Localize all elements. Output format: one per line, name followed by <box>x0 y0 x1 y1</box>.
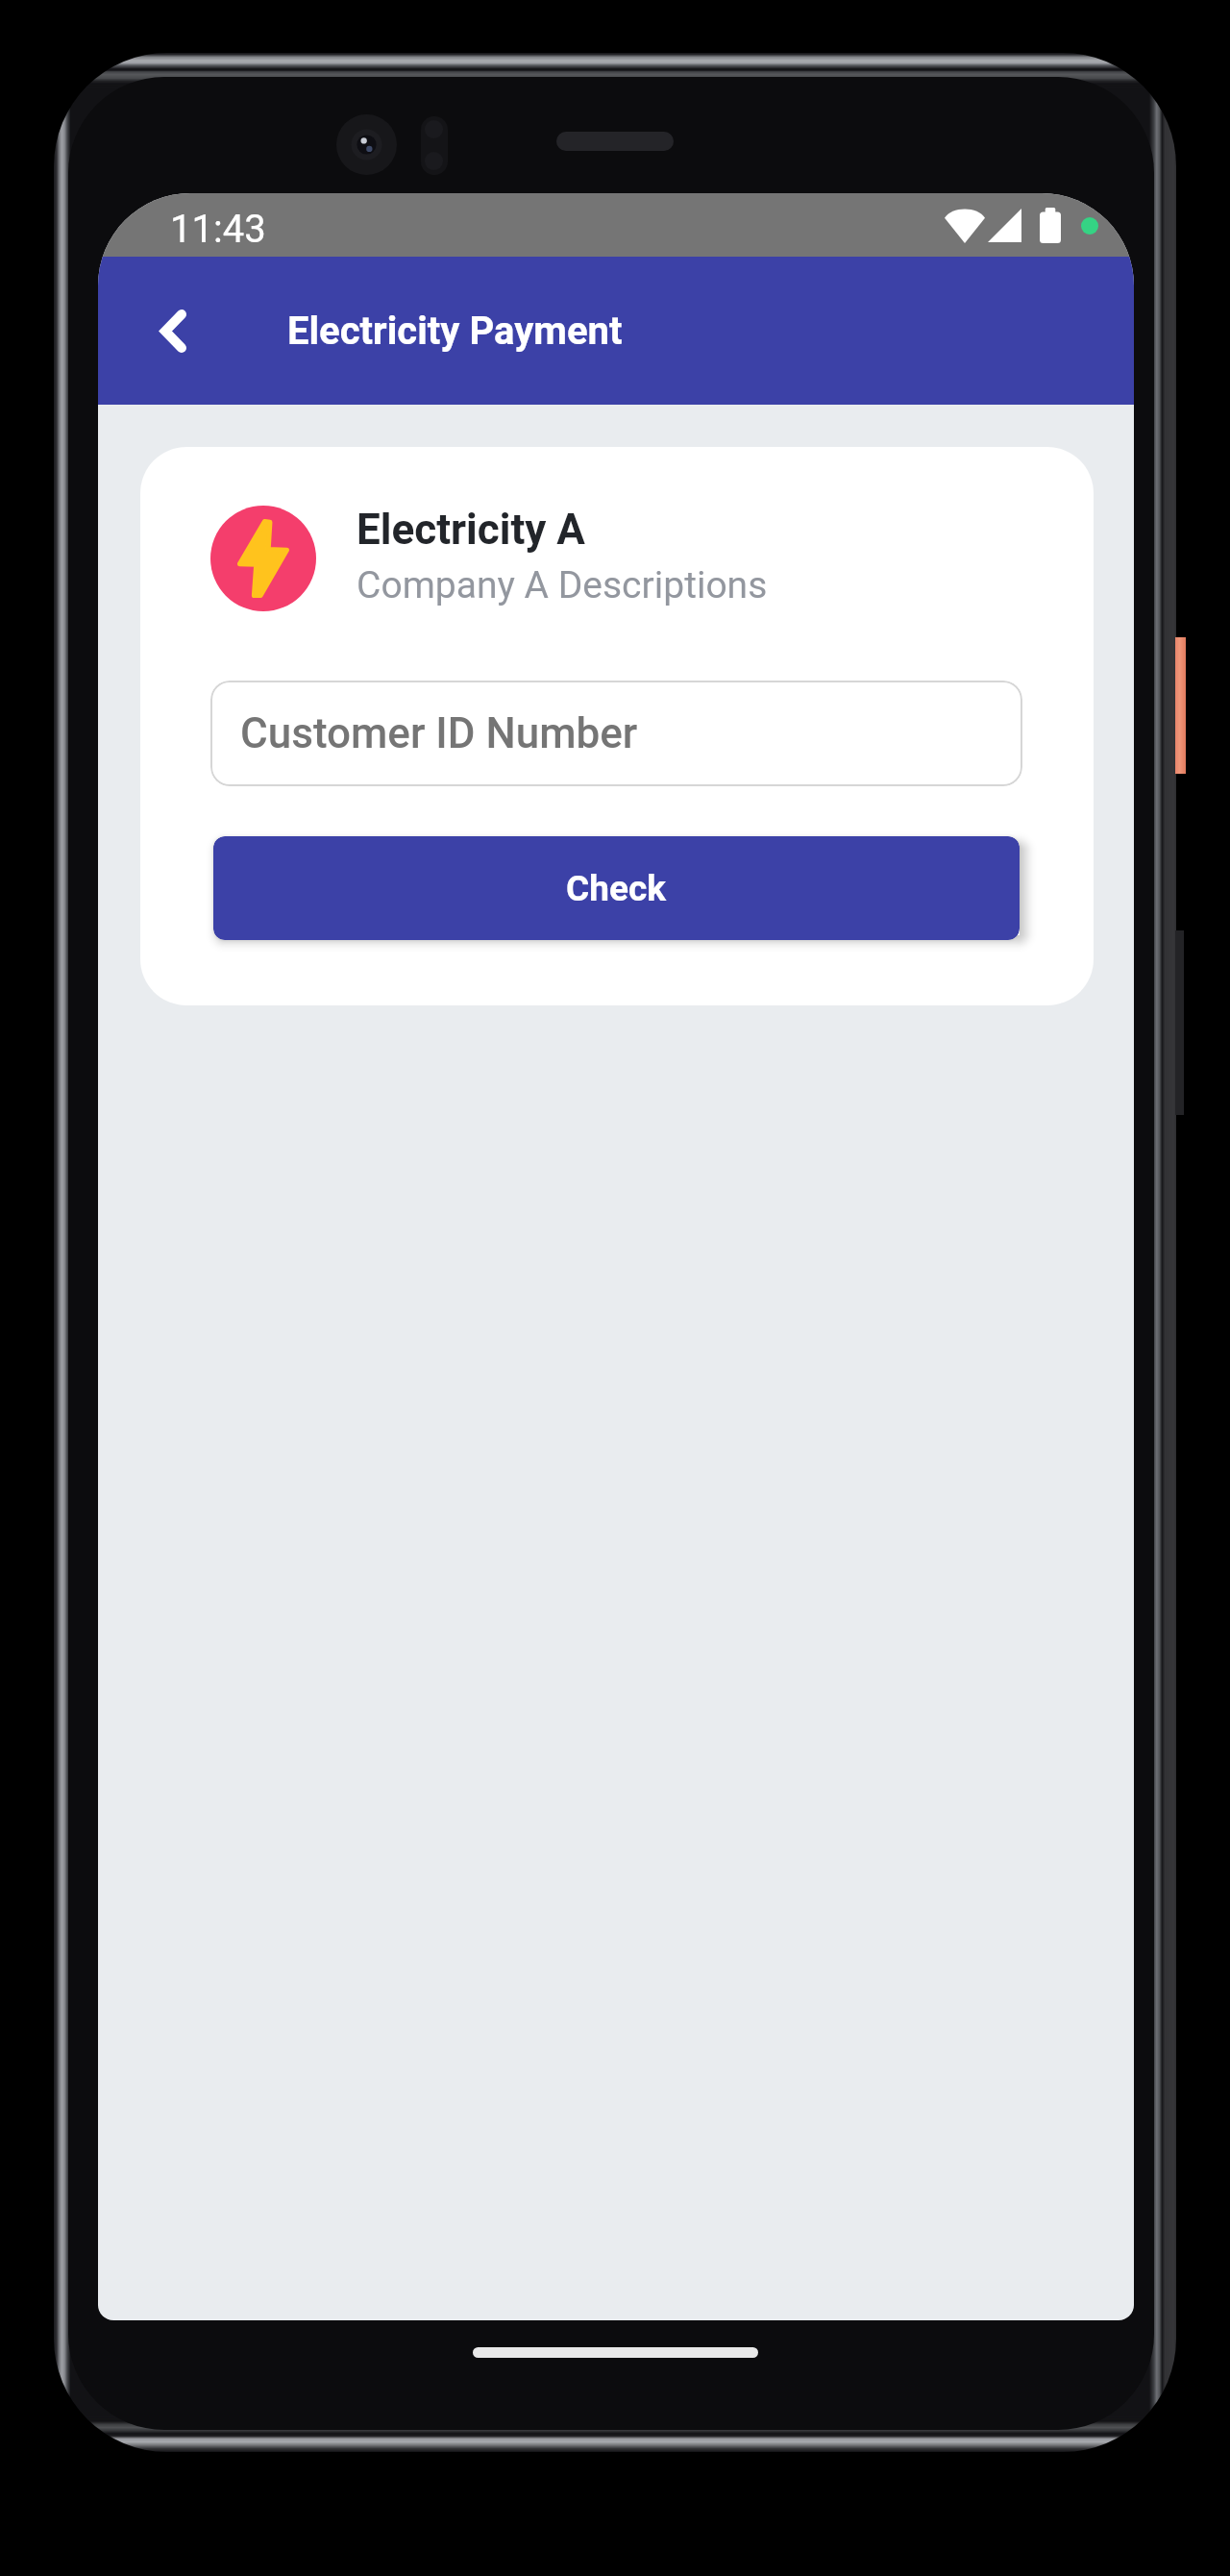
staticText: Customer ID Number <box>240 708 638 758</box>
button[interactable]: Check <box>213 836 1020 940</box>
staticText: Electricity Payment <box>287 309 623 354</box>
staticText: Electricity A <box>357 505 585 555</box>
staticText: Check <box>566 868 667 909</box>
staticText: Company A Descriptions <box>357 563 768 607</box>
button[interactable]: Back <box>133 285 213 377</box>
staticText: 11:43 <box>170 207 266 252</box>
button[interactable]: Customer ID Number <box>210 681 1022 786</box>
